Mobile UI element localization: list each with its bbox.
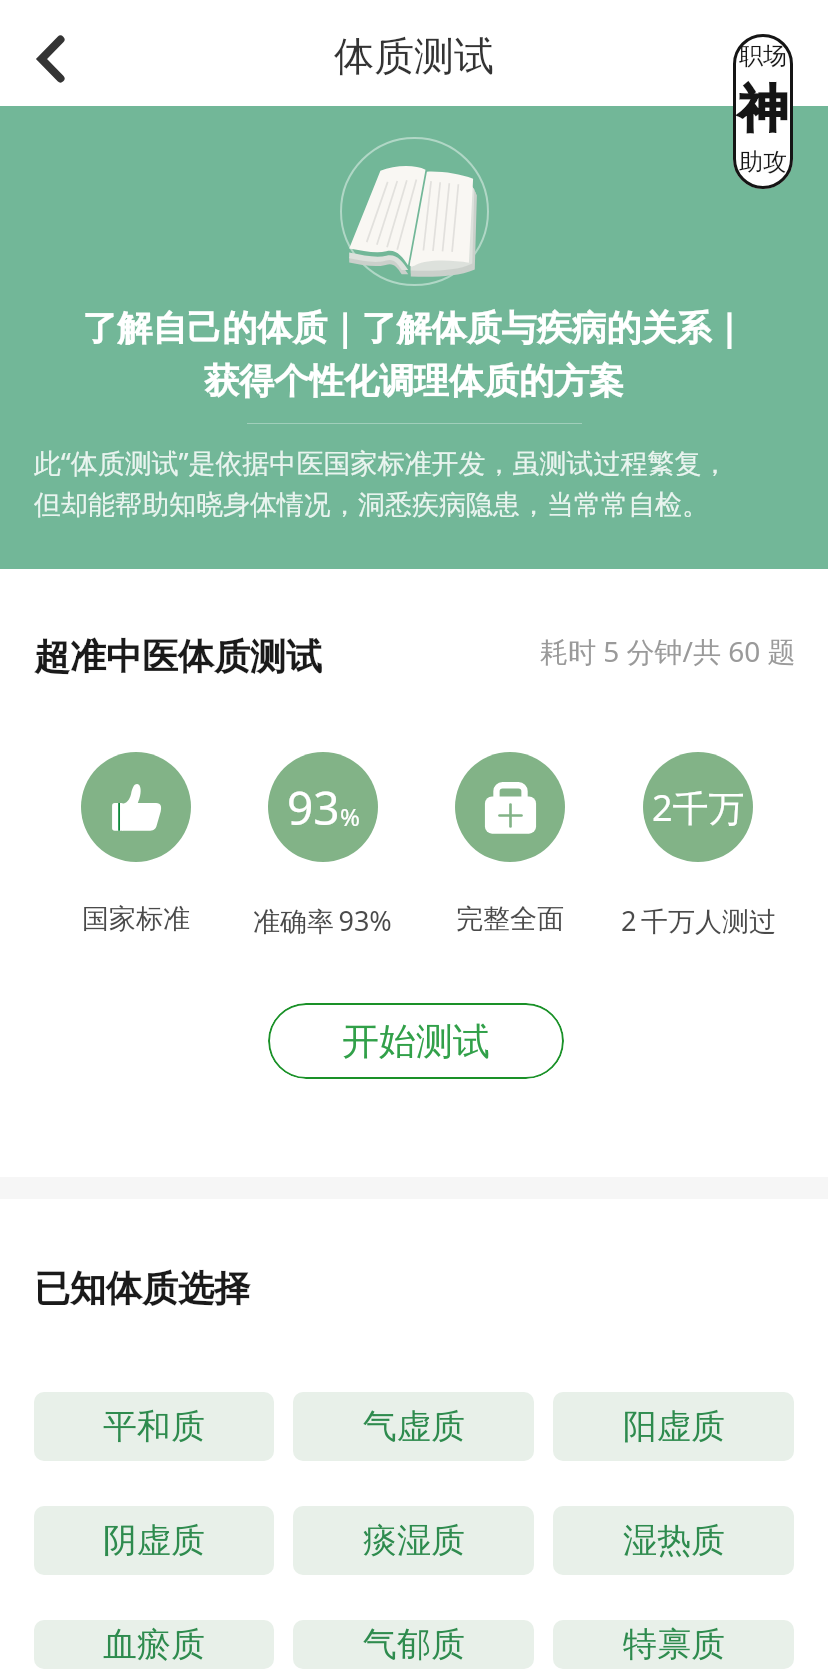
staticText: 气郁质 [363,1623,465,1666]
button[interactable]: 阴虚质 [34,1506,274,1575]
staticText: 耗时 5 分钟/共 60 题 [540,632,796,670]
staticText: 93 [287,776,340,839]
staticText: 血瘀质 [103,1623,205,1666]
button[interactable]: 阳虚质 [553,1392,794,1461]
staticText: 平和质 [103,1405,205,1448]
staticText: 此“体质测试”是依据中医国家标准开发，虽测试过程繁复， 但却能帮助知晓身体情况，… [34,444,808,522]
staticText: 开始测试 [342,1018,490,1065]
staticText: 特禀质 [623,1623,725,1666]
staticText: 职场 [739,41,787,71]
staticText: 2千万 [652,783,745,832]
staticText: 超准中医体质测试 [34,634,322,679]
staticText: 气虚质 [363,1405,465,1448]
button[interactable]: 开始测试 [268,1003,564,1079]
staticText: 国家标准 [82,902,190,936]
staticText: 准确率 93% [253,902,392,939]
staticText: 已知体质选择 [34,1266,250,1311]
staticText: 阴虚质 [103,1519,205,1562]
staticText: 体质测试 [334,31,494,81]
staticText: 神 [738,78,788,141]
button[interactable]: 湿热质 [553,1506,794,1575]
staticText: 助攻 [739,147,787,177]
button[interactable]: 平和质 [34,1392,274,1461]
staticText: 了解自己的体质｜了解体质与疾病的关系｜ 获得个性化调理体质的方案 [0,306,828,404]
button[interactable]: 国家标准 [42,752,229,936]
button[interactable]: 特禀质 [553,1620,794,1669]
button[interactable]: 93 [229,752,416,939]
staticText: 湿热质 [623,1519,725,1562]
staticText: % [340,800,360,833]
staticText: 完整全面 [456,902,564,936]
staticText: 2 千万人测过 [621,902,776,939]
staticText: 阳虚质 [623,1405,725,1448]
button[interactable]: 气郁质 [293,1620,534,1669]
button[interactable]: 血瘀质 [34,1620,274,1669]
button[interactable]: 2千万 [604,752,792,939]
button[interactable]: 痰湿质 [293,1506,534,1575]
staticText: 痰湿质 [363,1519,465,1562]
button[interactable]: Back [6,15,82,91]
button[interactable]: 气虚质 [293,1392,534,1461]
button[interactable]: 完整全面 [416,752,604,936]
